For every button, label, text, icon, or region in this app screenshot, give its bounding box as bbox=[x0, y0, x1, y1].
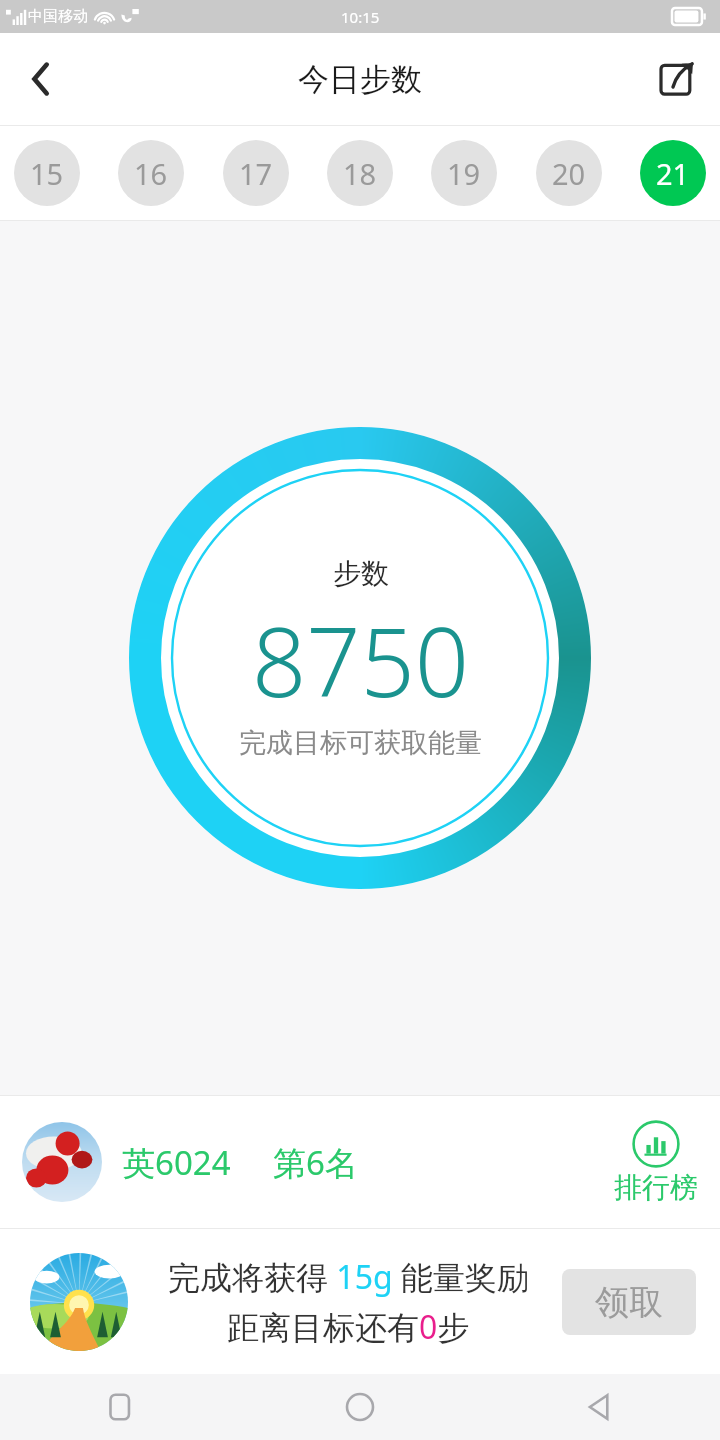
button[interactable]: 21 bbox=[640, 140, 706, 206]
button[interactable]: 19 bbox=[431, 140, 497, 206]
button[interactable]: Share bbox=[646, 48, 708, 110]
staticText: 15 bbox=[30, 154, 64, 193]
staticText: 17 bbox=[239, 154, 273, 193]
button[interactable]: Back bbox=[480, 1374, 720, 1440]
staticText: 英6024 bbox=[122, 1140, 231, 1185]
button[interactable]: 领取 bbox=[562, 1269, 696, 1335]
button[interactable]: 英6024 bbox=[0, 1096, 720, 1228]
button[interactable]: 17 bbox=[223, 140, 289, 206]
staticText: 排行榜 bbox=[614, 1170, 698, 1205]
button[interactable]: Recents bbox=[0, 1374, 240, 1440]
staticText: 完成目标可获取能量 bbox=[239, 726, 482, 760]
button[interactable]: 16 bbox=[118, 140, 184, 206]
staticText: 21 bbox=[656, 154, 690, 193]
button[interactable]: 15 bbox=[14, 140, 80, 206]
staticText: 16 bbox=[134, 154, 168, 193]
button[interactable]: 排行榜 bbox=[610, 1116, 702, 1209]
button[interactable]: Home bbox=[240, 1374, 480, 1440]
button[interactable]: Back bbox=[10, 48, 72, 110]
staticText: 领取 bbox=[595, 1281, 663, 1324]
staticText: 完成将获得 15g 能量奖励 bbox=[168, 1255, 529, 1299]
button[interactable]: 18 bbox=[327, 140, 393, 206]
staticText: 今日步数 bbox=[298, 60, 422, 99]
staticText: 距离目标还有0步 bbox=[227, 1305, 470, 1349]
staticText: 19 bbox=[447, 154, 481, 193]
staticText: 10:15 bbox=[341, 7, 380, 27]
button[interactable]: 20 bbox=[536, 140, 602, 206]
staticText: 18 bbox=[343, 154, 377, 193]
staticText: 8750 bbox=[252, 595, 469, 724]
staticText: 20 bbox=[552, 154, 586, 193]
staticText: 第6名 bbox=[273, 1140, 358, 1185]
staticText: 步数 bbox=[333, 556, 389, 591]
staticText: 中国移动 bbox=[28, 7, 88, 26]
